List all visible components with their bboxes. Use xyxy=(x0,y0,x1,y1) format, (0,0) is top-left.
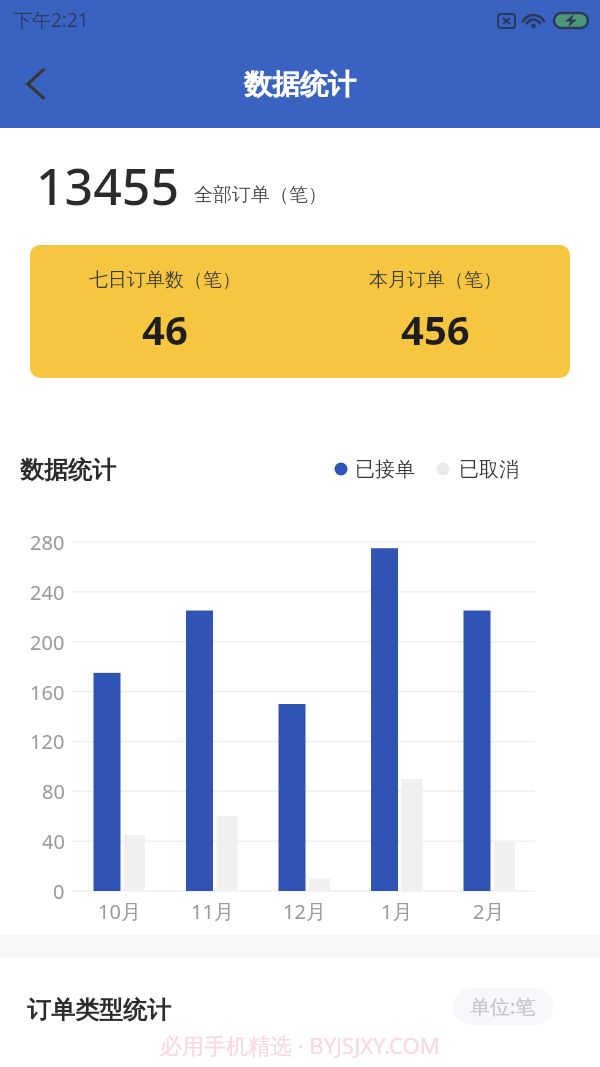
staticText: 全部订单（笔） xyxy=(194,183,327,207)
staticText: 1月 xyxy=(381,898,413,925)
staticText: 订单类型统计 xyxy=(27,995,171,1025)
staticText: 46 xyxy=(142,302,188,356)
staticText: 200 xyxy=(30,629,65,656)
staticText: 80 xyxy=(42,778,65,805)
staticText: 11月 xyxy=(191,898,234,925)
staticText: 已取消 xyxy=(459,457,519,482)
staticText: 已接单 xyxy=(355,457,415,482)
staticText: 456 xyxy=(401,302,470,356)
staticText: 数据统计 xyxy=(244,67,356,102)
staticText: 10月 xyxy=(98,898,141,925)
button[interactable]: 单位:笔 xyxy=(453,988,553,1025)
button[interactable] xyxy=(14,64,58,104)
staticText: 0 xyxy=(53,878,65,905)
staticText: 2月 xyxy=(473,898,505,925)
staticText: 下午2:21 xyxy=(13,7,89,33)
staticText: 40 xyxy=(42,828,65,855)
button[interactable]: 七日订单数（笔） xyxy=(30,245,570,378)
staticText: 240 xyxy=(30,579,65,606)
staticText: 13455 xyxy=(36,152,179,220)
staticText: 280 xyxy=(30,529,65,556)
staticText: 本月订单（笔） xyxy=(369,268,502,292)
staticText: 单位:笔 xyxy=(470,993,536,1020)
staticText: 必用手机精选 · BYJSJXY.COM xyxy=(160,1030,440,1060)
staticText: 七日订单数（笔） xyxy=(89,268,241,292)
staticText: 12月 xyxy=(283,898,326,925)
staticText: 160 xyxy=(30,679,65,706)
staticText: 120 xyxy=(30,728,65,755)
staticText: 数据统计 xyxy=(20,455,116,485)
